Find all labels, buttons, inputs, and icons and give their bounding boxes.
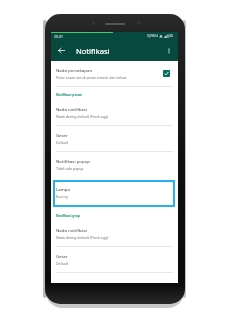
button[interactable]: Nada notifikasi [51, 100, 178, 125]
staticText: Tidak ada popup [56, 166, 84, 171]
button[interactable]: Lampu [53, 180, 175, 207]
staticText: 20.01 [54, 34, 63, 39]
button[interactable]: Getar [51, 247, 178, 272]
button[interactable]: Nada percakapan [51, 61, 178, 86]
staticText: Nada percakapan [56, 67, 93, 73]
staticText: Default [56, 140, 69, 145]
button[interactable]: Back [54, 43, 69, 58]
button[interactable]: Nada notifikasi [51, 221, 178, 246]
staticText: Notifikasi pesan [56, 93, 82, 97]
staticText: Getar [56, 253, 68, 259]
button[interactable]: Notifikasi popup [51, 152, 178, 177]
staticText: Notifikasi popup [56, 158, 90, 164]
staticText: Nada dering default (Fresh.ogg) [56, 235, 109, 240]
staticText: Default [56, 261, 69, 266]
staticText: Notifikasi grup [56, 214, 80, 218]
button[interactable]: More options [162, 44, 176, 58]
staticText: Kuning [56, 194, 68, 199]
staticText: Notifikasi [76, 46, 110, 56]
staticText: Nada notifikasi [56, 106, 87, 112]
staticText: 0,09K/d [147, 34, 158, 38]
staticText: Lampu [56, 186, 71, 192]
button[interactable]: Getar [51, 126, 178, 151]
staticText: Putar suara untuk pesan masuk dan keluar… [56, 75, 128, 80]
staticText: Nada notifikasi [56, 227, 87, 233]
staticText: Nada dering default (Fresh.ogg) [56, 114, 109, 119]
staticText: 4G [169, 34, 173, 38]
staticText: Getar [56, 132, 68, 138]
